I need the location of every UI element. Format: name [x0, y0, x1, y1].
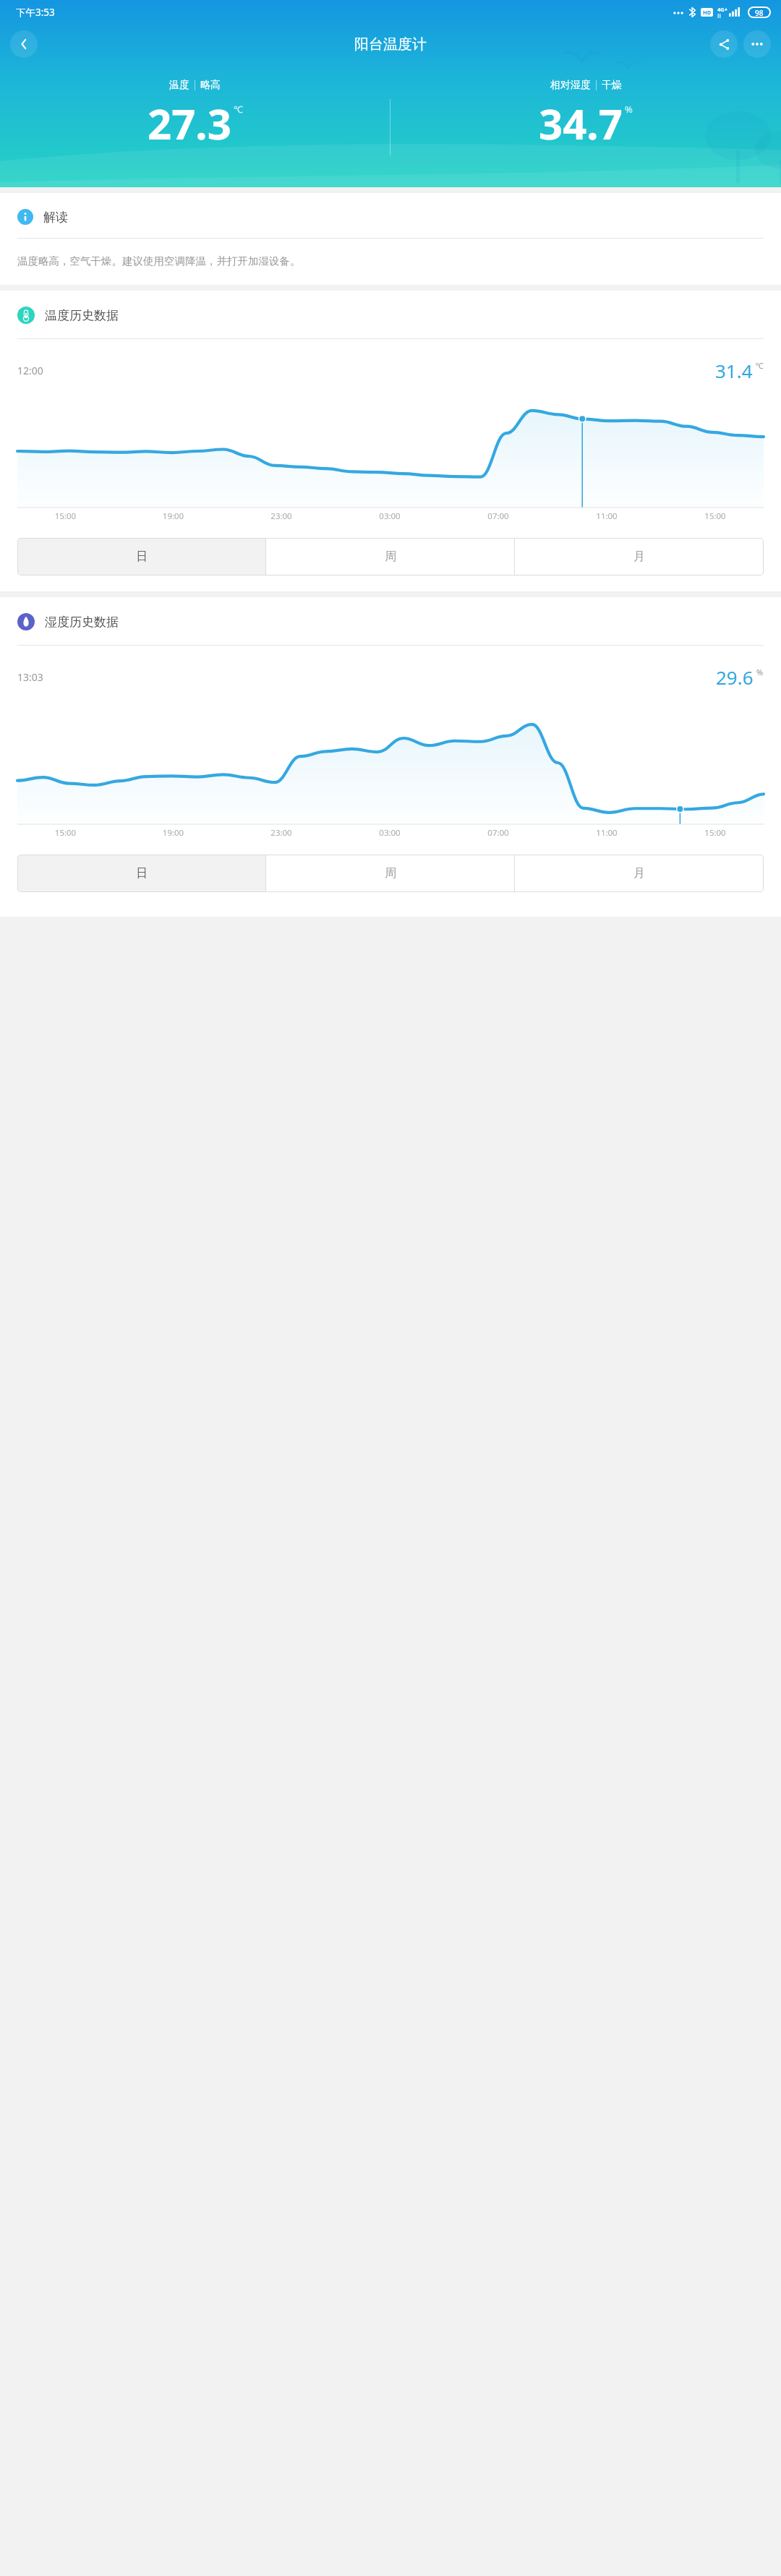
staticText: 干燥	[602, 79, 622, 92]
staticText: 11:00	[552, 510, 661, 522]
staticText: 03:00	[336, 510, 444, 522]
staticText: 下午3:53	[16, 6, 55, 19]
staticText: %	[756, 667, 764, 677]
staticText: 4G+	[717, 6, 728, 13]
button[interactable]: More options	[743, 30, 771, 58]
staticText: 12:00	[17, 364, 43, 377]
staticText: 15:00	[661, 510, 769, 522]
staticText: 07:00	[444, 510, 552, 522]
button[interactable]: 周	[266, 539, 514, 575]
staticText: 温度历史数据	[45, 308, 119, 323]
button[interactable]: 月	[515, 539, 763, 575]
staticText: 19:00	[119, 510, 227, 522]
button[interactable]: 月	[515, 855, 763, 891]
staticText: 98	[755, 8, 764, 17]
staticText: HD	[703, 9, 712, 16]
staticText: 23:00	[227, 510, 336, 522]
staticText: 19:00	[119, 827, 227, 839]
staticText: 周	[385, 549, 396, 564]
staticText: 23:00	[227, 827, 336, 839]
staticText: 略高	[200, 79, 221, 92]
staticText: 03:00	[336, 827, 444, 839]
staticText: 34.7	[539, 95, 623, 152]
button[interactable]: 日	[18, 539, 265, 575]
staticText: 温度略高，空气干燥。建议使用空调降温，并打开加湿设备。	[17, 254, 301, 268]
staticText: 15:00	[12, 510, 119, 522]
staticText: 07:00	[444, 827, 552, 839]
staticText: ℃	[756, 360, 764, 371]
staticText: %	[625, 103, 633, 116]
staticText: 湿度历史数据	[45, 615, 119, 630]
button[interactable]: 温度历史数据	[0, 291, 781, 338]
staticText: 周	[385, 866, 396, 881]
button[interactable]: Share	[710, 30, 738, 58]
staticText: 阳台温度计	[354, 35, 427, 54]
button[interactable]: 日	[18, 855, 265, 891]
staticText: 月	[633, 866, 645, 881]
staticText: 27.3	[148, 95, 231, 152]
staticText: 15:00	[661, 827, 769, 839]
staticText: 相对湿度	[550, 79, 591, 92]
staticText: 解读	[43, 210, 68, 225]
staticText: 15:00	[12, 827, 119, 839]
button[interactable]: 湿度历史数据	[0, 597, 781, 645]
staticText: 29.6	[716, 664, 754, 690]
button[interactable]: Back	[10, 30, 38, 58]
staticText: 月	[633, 549, 645, 564]
button[interactable]: 解读	[0, 193, 781, 238]
staticText: 温度	[169, 79, 189, 92]
staticText: 13:03	[17, 670, 43, 684]
staticText: ℃	[234, 103, 243, 116]
staticText: 日	[136, 549, 148, 564]
staticText: 11:00	[552, 827, 661, 839]
staticText: 31.4	[715, 358, 753, 383]
staticText: 日	[136, 866, 148, 881]
button[interactable]: 周	[266, 855, 514, 891]
